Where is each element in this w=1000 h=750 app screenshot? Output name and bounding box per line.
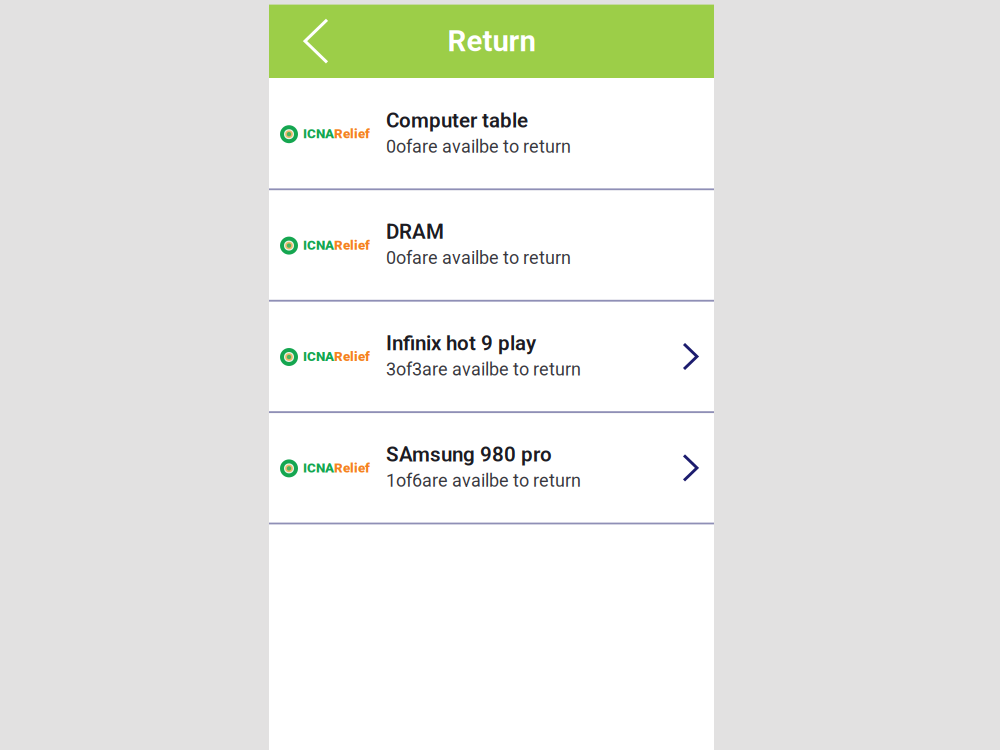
- staticText: 3of3are availbe to return: [386, 359, 581, 380]
- staticText: Relief: [334, 460, 370, 476]
- staticText: ICNA: [303, 237, 334, 253]
- staticText: SAmsung 980 pro: [386, 443, 552, 467]
- staticText: Infinix hot 9 play: [386, 331, 536, 355]
- staticText: 0ofare availbe to return: [386, 136, 571, 157]
- staticText: Computer table: [386, 108, 528, 132]
- button[interactable]: Infinix hot 9 play: [269, 302, 714, 413]
- staticText: Relief: [334, 349, 370, 364]
- button[interactable]: Computer table: [269, 79, 714, 190]
- staticText: ICNA: [303, 349, 334, 364]
- button[interactable]: SAmsung 980 pro: [269, 413, 714, 525]
- staticText: ICNA: [303, 126, 334, 141]
- staticText: 1of6are availbe to return: [386, 470, 581, 491]
- button[interactable]: Back: [269, 5, 355, 78]
- staticText: Relief: [334, 237, 370, 253]
- staticText: Relief: [334, 126, 370, 141]
- staticText: DRAM: [386, 220, 444, 244]
- staticText: Return: [447, 24, 535, 58]
- button[interactable]: DRAM: [269, 190, 714, 302]
- staticText: 0ofare availbe to return: [386, 247, 571, 268]
- staticText: ICNA: [303, 460, 334, 476]
